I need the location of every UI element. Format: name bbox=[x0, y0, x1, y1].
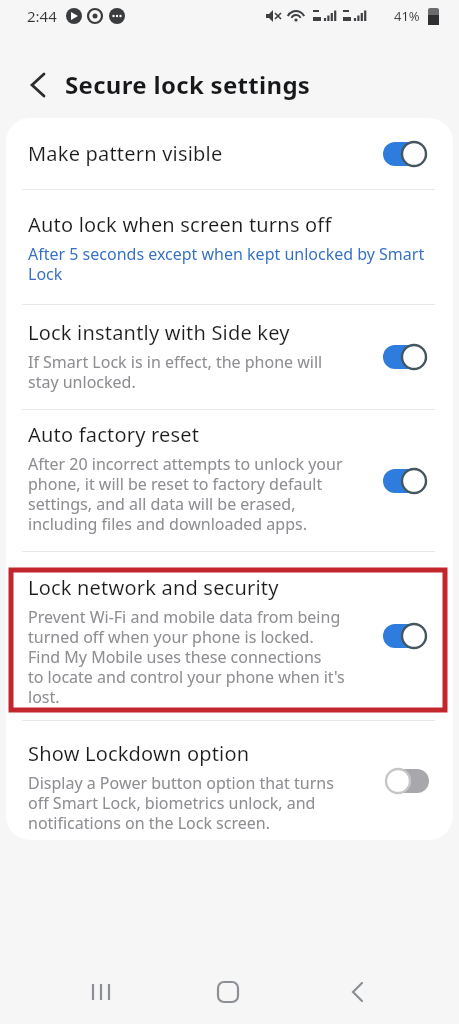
staticText: If Smart Lock is in effect, the phone wi… bbox=[28, 351, 323, 392]
staticText: Prevent Wi-Fi and mobile data from being… bbox=[28, 606, 345, 707]
button[interactable]: Auto factory reset bbox=[6, 410, 453, 551]
button[interactable]: Make pattern visible bbox=[6, 118, 453, 189]
button[interactable]: Show Lockdown option bbox=[6, 721, 453, 840]
staticText: After 5 seconds except when kept unlocke… bbox=[28, 243, 425, 284]
button[interactable] bbox=[28, 73, 48, 97]
button[interactable]: Lock network and security bbox=[6, 552, 453, 720]
staticText: Lock network and security bbox=[28, 574, 279, 601]
staticText: 41% bbox=[394, 7, 420, 25]
button[interactable] bbox=[383, 343, 429, 371]
button[interactable] bbox=[383, 767, 429, 795]
button[interactable] bbox=[383, 467, 429, 495]
staticText: Display a Power button option that turns… bbox=[28, 772, 334, 833]
staticText: After 20 incorrect attempts to unlock yo… bbox=[28, 453, 343, 534]
button[interactable] bbox=[383, 622, 429, 650]
staticText: Show Lockdown option bbox=[28, 740, 250, 767]
staticText: 2:44 bbox=[27, 6, 57, 26]
staticText: Secure lock settings bbox=[65, 68, 311, 101]
staticText: Make pattern visible bbox=[28, 140, 223, 167]
staticText: Auto factory reset bbox=[28, 421, 200, 448]
button[interactable] bbox=[383, 140, 429, 168]
button[interactable]: Lock instantly with Side key bbox=[6, 305, 453, 409]
staticText: Auto lock when screen turns off bbox=[28, 211, 332, 238]
staticText: Lock instantly with Side key bbox=[28, 319, 290, 346]
button[interactable]: Auto lock when screen turns off bbox=[6, 190, 453, 304]
